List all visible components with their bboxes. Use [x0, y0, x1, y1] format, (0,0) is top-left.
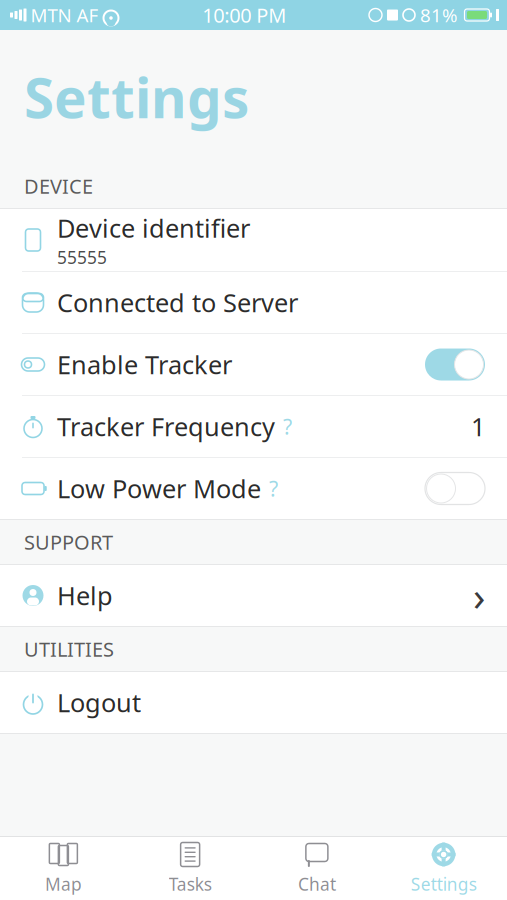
- staticText: 55555: [57, 246, 107, 269]
- staticText: Help: [57, 579, 113, 612]
- button[interactable]: Low Power Mode: [0, 458, 507, 519]
- staticText: Tracker Frequency: [57, 410, 275, 443]
- staticText: Tasks: [169, 872, 212, 895]
- staticText: MTN AF: [30, 3, 98, 27]
- button[interactable]: Enable Tracker: [0, 334, 507, 395]
- button[interactable]: Map: [0, 837, 127, 900]
- staticText: DEVICE: [24, 173, 93, 199]
- button[interactable]: Logout: [0, 672, 507, 733]
- staticText: Map: [45, 872, 82, 895]
- staticText: 10:00 PM: [202, 2, 286, 28]
- staticText: 1: [471, 410, 485, 443]
- button[interactable]: Device identifier: [0, 209, 507, 271]
- staticText: Device identifier: [57, 211, 250, 245]
- staticText: UTILITIES: [24, 636, 114, 662]
- staticText: Enable Tracker: [57, 348, 232, 381]
- button[interactable]: Chat: [253, 837, 380, 900]
- button[interactable]: Help: [0, 565, 507, 626]
- staticText: 81%: [420, 3, 458, 27]
- button[interactable]: Tracker Frequency: [0, 396, 507, 457]
- staticText: ?: [269, 474, 278, 503]
- staticText: SUPPORT: [24, 529, 113, 555]
- staticText: ›: [473, 569, 485, 622]
- staticText: Chat: [298, 872, 336, 895]
- button[interactable]: Connected to Server: [0, 272, 507, 333]
- staticText: Settings: [24, 61, 249, 133]
- button[interactable]: Tasks: [127, 837, 254, 900]
- staticText: Logout: [57, 686, 141, 719]
- staticText: Connected to Server: [57, 286, 298, 319]
- staticText: ?: [283, 412, 292, 441]
- staticText: Low Power Mode: [57, 472, 261, 505]
- staticText: Settings: [411, 872, 477, 895]
- button[interactable]: Settings: [380, 837, 507, 900]
